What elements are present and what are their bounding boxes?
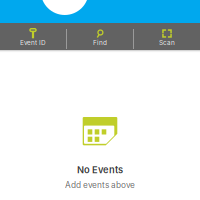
staticText: Event ID [20, 39, 46, 46]
button[interactable]: Scan [134, 23, 200, 50]
button[interactable]: Find [67, 23, 133, 50]
staticText: Find [93, 39, 107, 46]
staticText: Scan [159, 39, 175, 46]
staticText: Add events above [65, 180, 135, 190]
button[interactable]: Event ID [0, 23, 66, 50]
staticText: No Events [77, 164, 123, 176]
